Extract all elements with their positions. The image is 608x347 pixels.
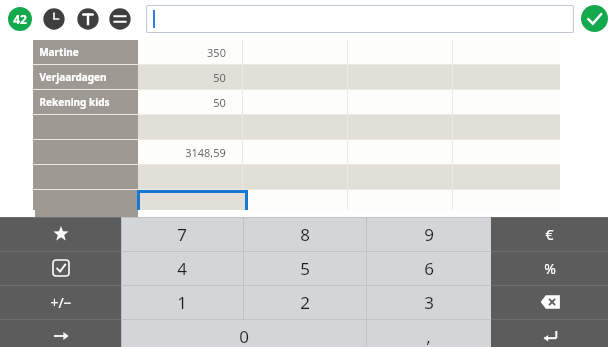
staticText: +/− (50, 293, 72, 312)
button[interactable]: 8 (243, 217, 366, 251)
button[interactable]: 350 (138, 40, 242, 64)
button[interactable]: 3 (366, 285, 491, 319)
button[interactable]: Percent (491, 251, 608, 285)
button[interactable]: History (40, 5, 68, 33)
staticText: Martine (39, 45, 79, 59)
staticText: 0 (239, 325, 249, 347)
button[interactable]: , (366, 319, 491, 347)
button[interactable]: Euro (491, 217, 608, 251)
staticText: Verjaardagen (39, 70, 107, 84)
button[interactable]: 6 (366, 251, 491, 285)
button[interactable]: Martine (33, 40, 138, 64)
staticText: 42 (13, 11, 27, 27)
staticText: , (426, 325, 431, 347)
button[interactable] (137, 190, 248, 217)
staticText: 1 (177, 291, 187, 314)
button[interactable]: 1 (121, 285, 243, 319)
button[interactable]: Text format (74, 5, 102, 33)
button[interactable] (33, 190, 138, 212)
button[interactable] (138, 190, 242, 212)
button[interactable]: Functions (106, 5, 134, 33)
button[interactable] (243, 190, 347, 212)
button[interactable]: 4 (121, 251, 243, 285)
staticText: 5 (300, 257, 310, 280)
button[interactable]: Rekening kids (33, 90, 138, 114)
button[interactable]: Verjaardagen (33, 65, 138, 89)
button[interactable]: 3148,59 (138, 140, 242, 164)
button[interactable]: 50 (138, 90, 242, 114)
button[interactable]: Favorites (0, 217, 121, 251)
button[interactable]: Confirm (581, 5, 608, 32)
staticText: 3148,59 (185, 145, 226, 160)
button[interactable]: Next cell (0, 319, 121, 347)
button[interactable]: 9 (366, 217, 491, 251)
button[interactable]: Formula count 42 (8, 7, 32, 31)
staticText: 2 (300, 291, 310, 314)
button[interactable]: 0 (121, 319, 366, 347)
button[interactable]: 5 (243, 251, 366, 285)
button[interactable]: 50 (138, 65, 242, 89)
staticText: 8 (300, 223, 310, 246)
staticText: € (545, 225, 554, 244)
staticText: 350 (207, 45, 226, 60)
staticText: Rekening kids (39, 95, 110, 109)
button[interactable]: Enter (491, 319, 608, 347)
staticText: 6 (424, 257, 434, 280)
staticText: 4 (177, 257, 187, 280)
staticText: 3 (424, 291, 434, 314)
button[interactable]: Select (0, 251, 121, 285)
button[interactable]: Backspace (491, 285, 608, 319)
button[interactable] (146, 5, 574, 33)
staticText: 50 (213, 95, 226, 110)
staticText: % (544, 259, 556, 278)
staticText: 50 (213, 70, 226, 85)
staticText: 9 (424, 223, 434, 246)
button[interactable]: 2 (243, 285, 366, 319)
staticText: 7 (177, 223, 187, 246)
button[interactable]: 7 (121, 217, 243, 251)
button[interactable]: Toggle sign (0, 285, 121, 319)
